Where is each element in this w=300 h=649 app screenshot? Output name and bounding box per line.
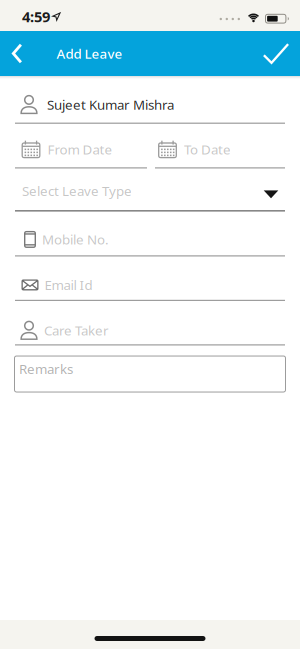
staticText: Sujeet Kumar Mishra xyxy=(47,96,174,113)
staticText: Select Leave Type xyxy=(22,182,132,200)
staticText: Email Id xyxy=(44,276,92,294)
staticText: Mobile No. xyxy=(42,231,109,248)
staticText: Care Taker xyxy=(44,321,109,339)
button[interactable]: Care Taker xyxy=(0,301,300,345)
button[interactable]: Email Id xyxy=(0,256,300,301)
button[interactable] xyxy=(263,32,300,75)
button[interactable]: Select Leave Type xyxy=(0,168,300,211)
button[interactable]: From Date xyxy=(15,124,147,168)
button[interactable]: To Date xyxy=(155,124,285,168)
staticText: To Date xyxy=(184,140,231,158)
button[interactable]: Sujeet Kumar Mishra xyxy=(0,76,300,124)
button[interactable] xyxy=(0,32,22,75)
staticText: Add Leave xyxy=(56,45,122,62)
staticText: From Date xyxy=(47,140,112,158)
staticText: 4:59 xyxy=(22,7,50,26)
button[interactable]: Remarks xyxy=(14,356,285,392)
button[interactable]: Mobile No. xyxy=(0,211,300,256)
staticText: Remarks xyxy=(19,360,73,378)
